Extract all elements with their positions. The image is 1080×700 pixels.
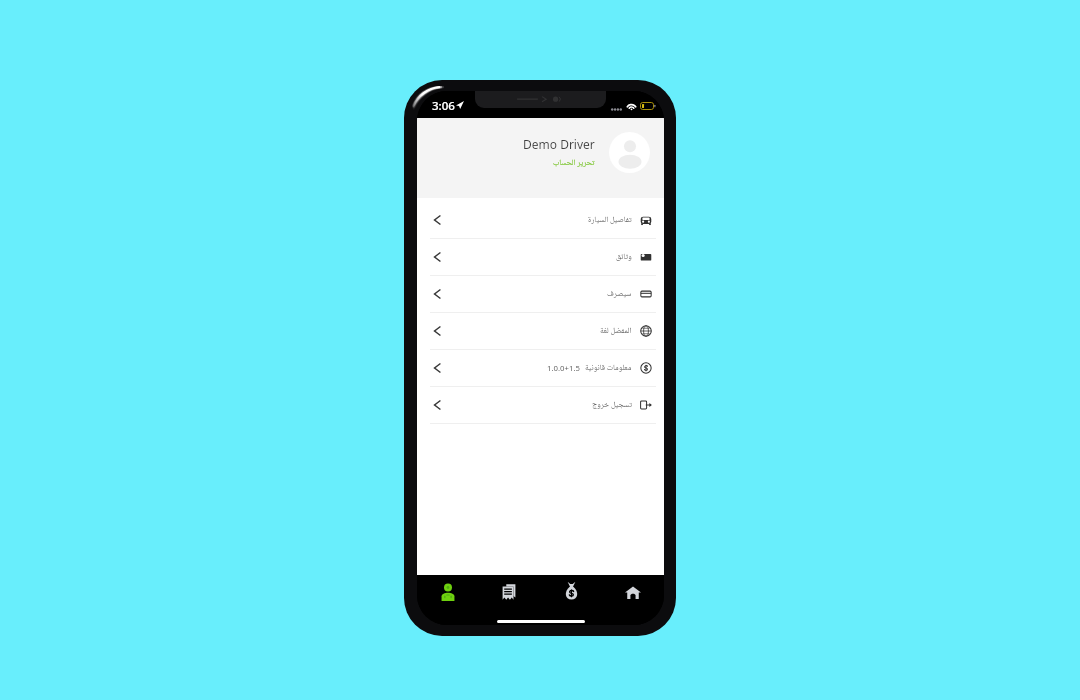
staticText: سيصرف [607, 287, 632, 301]
staticText: 3:06 [432, 98, 455, 114]
button[interactable]: Profile [417, 575, 478, 608]
button[interactable]: Earnings [540, 575, 602, 608]
button[interactable]: 1.0.0+1.5 [417, 350, 664, 386]
button[interactable]: المفضل لغة [417, 313, 664, 349]
staticText: معلومات قانونية [585, 361, 632, 375]
staticText: تحرير الحساب [553, 156, 595, 170]
button[interactable]: Demo Driver [523, 132, 650, 173]
staticText: Demo Driver [523, 136, 595, 152]
button[interactable]: Orders [478, 575, 540, 608]
staticText: وثائق [616, 250, 632, 264]
button[interactable]: سيصرف [417, 276, 664, 312]
staticText: المفضل لغة [600, 324, 632, 338]
button[interactable]: Home [602, 575, 664, 608]
button[interactable]: تفاصيل السيارة [417, 202, 664, 238]
button[interactable]: وثائق [417, 239, 664, 275]
staticText: تسجيل خروج [592, 398, 632, 412]
staticText: تفاصيل السيارة [588, 213, 632, 227]
button[interactable]: تسجيل خروج [417, 387, 664, 423]
staticText: 1.0.0+1.5 [547, 363, 581, 374]
